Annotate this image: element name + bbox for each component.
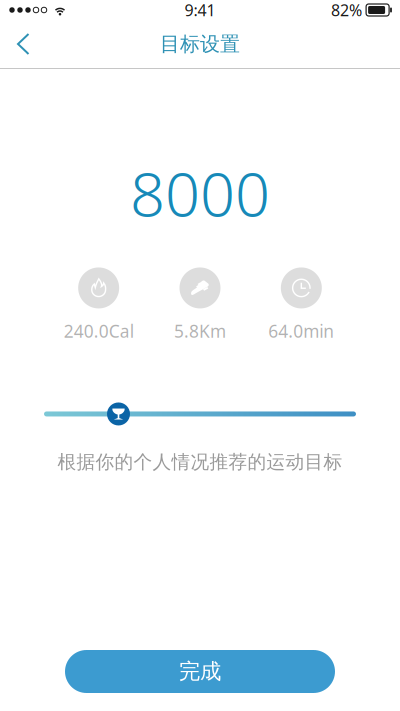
staticText: 8000 (130, 152, 270, 233)
button[interactable]: Back (0, 21, 44, 67)
staticText: 240.0Cal (64, 319, 134, 342)
staticText: 目标设置 (160, 32, 240, 56)
staticText: 9:41 (184, 0, 215, 21)
staticText: 完成 (179, 658, 221, 685)
staticText: 64.0min (268, 319, 334, 342)
staticText: 5.8Km (174, 319, 226, 342)
staticText: 82% (331, 0, 362, 21)
button[interactable]: 完成 (65, 650, 335, 693)
staticText: 根据你的个人情况推荐的运动目标 (57, 450, 342, 473)
